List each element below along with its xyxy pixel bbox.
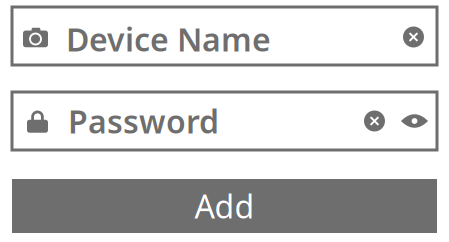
button[interactable]: Clear Password bbox=[364, 110, 385, 131]
button[interactable]: Password bbox=[12, 92, 437, 150]
button[interactable]: Device Name bbox=[12, 7, 437, 65]
staticText: Device Name bbox=[66, 18, 271, 60]
staticText: Add bbox=[194, 185, 254, 227]
button[interactable]: Clear Device Name bbox=[403, 24, 424, 47]
button[interactable]: Add bbox=[12, 179, 437, 233]
button[interactable]: Show Password bbox=[401, 114, 428, 128]
staticText: Password bbox=[68, 100, 219, 142]
